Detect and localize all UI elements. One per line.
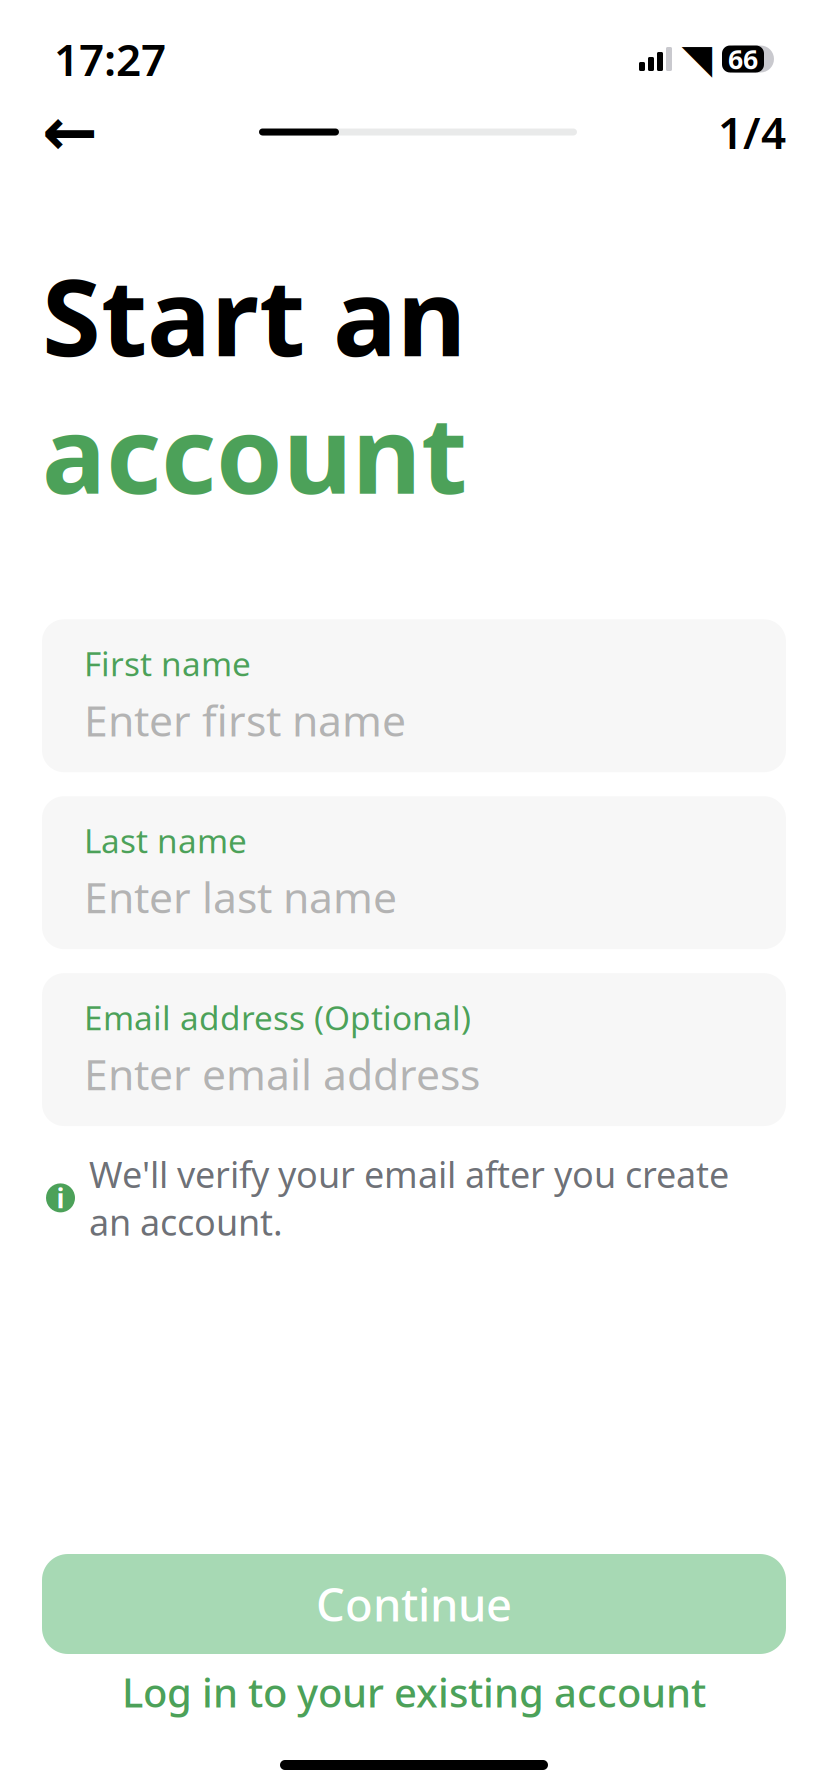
button[interactable]: Log in to your existing account [42,1654,786,1730]
staticText: 66 [728,41,758,77]
staticText: Email address (Optional) [84,995,471,1039]
staticText: Continue [316,1574,512,1634]
staticText: Enter email address [84,1045,480,1102]
staticText: i [56,1180,64,1216]
staticText: Last name [84,818,247,862]
staticText: We'll verify your email after you create… [89,1150,729,1246]
staticText: account [42,382,467,523]
staticText: 17:27 [54,30,166,88]
staticText: ◥ [681,36,712,82]
staticText: Start an [42,244,466,386]
button[interactable]: Last name [42,796,786,949]
button[interactable]: Continue [42,1554,786,1654]
staticText: Enter first name [84,692,406,748]
staticText: ← [42,94,98,170]
staticText: First name [84,641,251,686]
button[interactable]: Back [42,94,118,170]
staticText: Log in to your existing account [122,1665,706,1718]
staticText: Enter last name [84,868,397,925]
staticText: 1/4 [718,103,786,161]
button[interactable]: First name [42,619,786,772]
button[interactable]: Email address (Optional) [42,973,786,1126]
